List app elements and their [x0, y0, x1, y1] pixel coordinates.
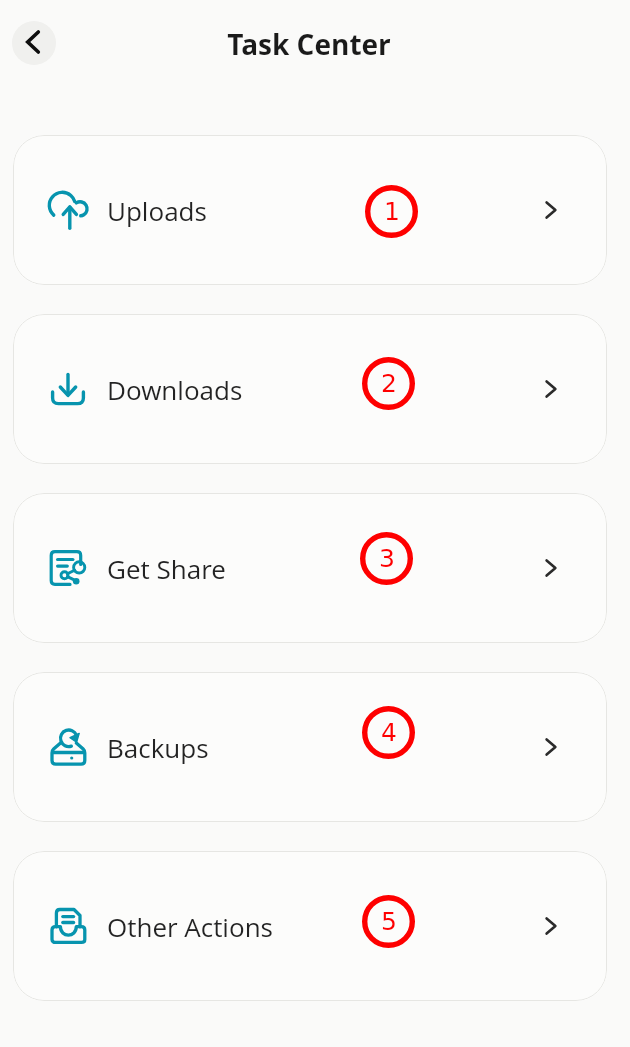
staticText: 1	[384, 197, 400, 226]
button[interactable]: Downloads	[13, 314, 607, 464]
staticText: 2	[381, 369, 397, 398]
staticText: Other Actions	[107, 909, 273, 944]
staticText: Task Center	[0, 25, 618, 63]
staticText: 4	[381, 718, 397, 747]
button[interactable]: Get Share	[13, 493, 607, 643]
button[interactable]: Uploads	[13, 135, 607, 285]
staticText: 5	[381, 907, 397, 936]
staticText: Get Share	[107, 551, 226, 586]
button[interactable]: Back	[12, 21, 56, 65]
button[interactable]: Backups	[13, 672, 607, 822]
staticText: Downloads	[107, 372, 243, 407]
button[interactable]: Other Actions	[13, 851, 607, 1001]
staticText: Backups	[107, 730, 209, 765]
staticText: Uploads	[107, 193, 207, 228]
staticText: 3	[379, 544, 395, 573]
